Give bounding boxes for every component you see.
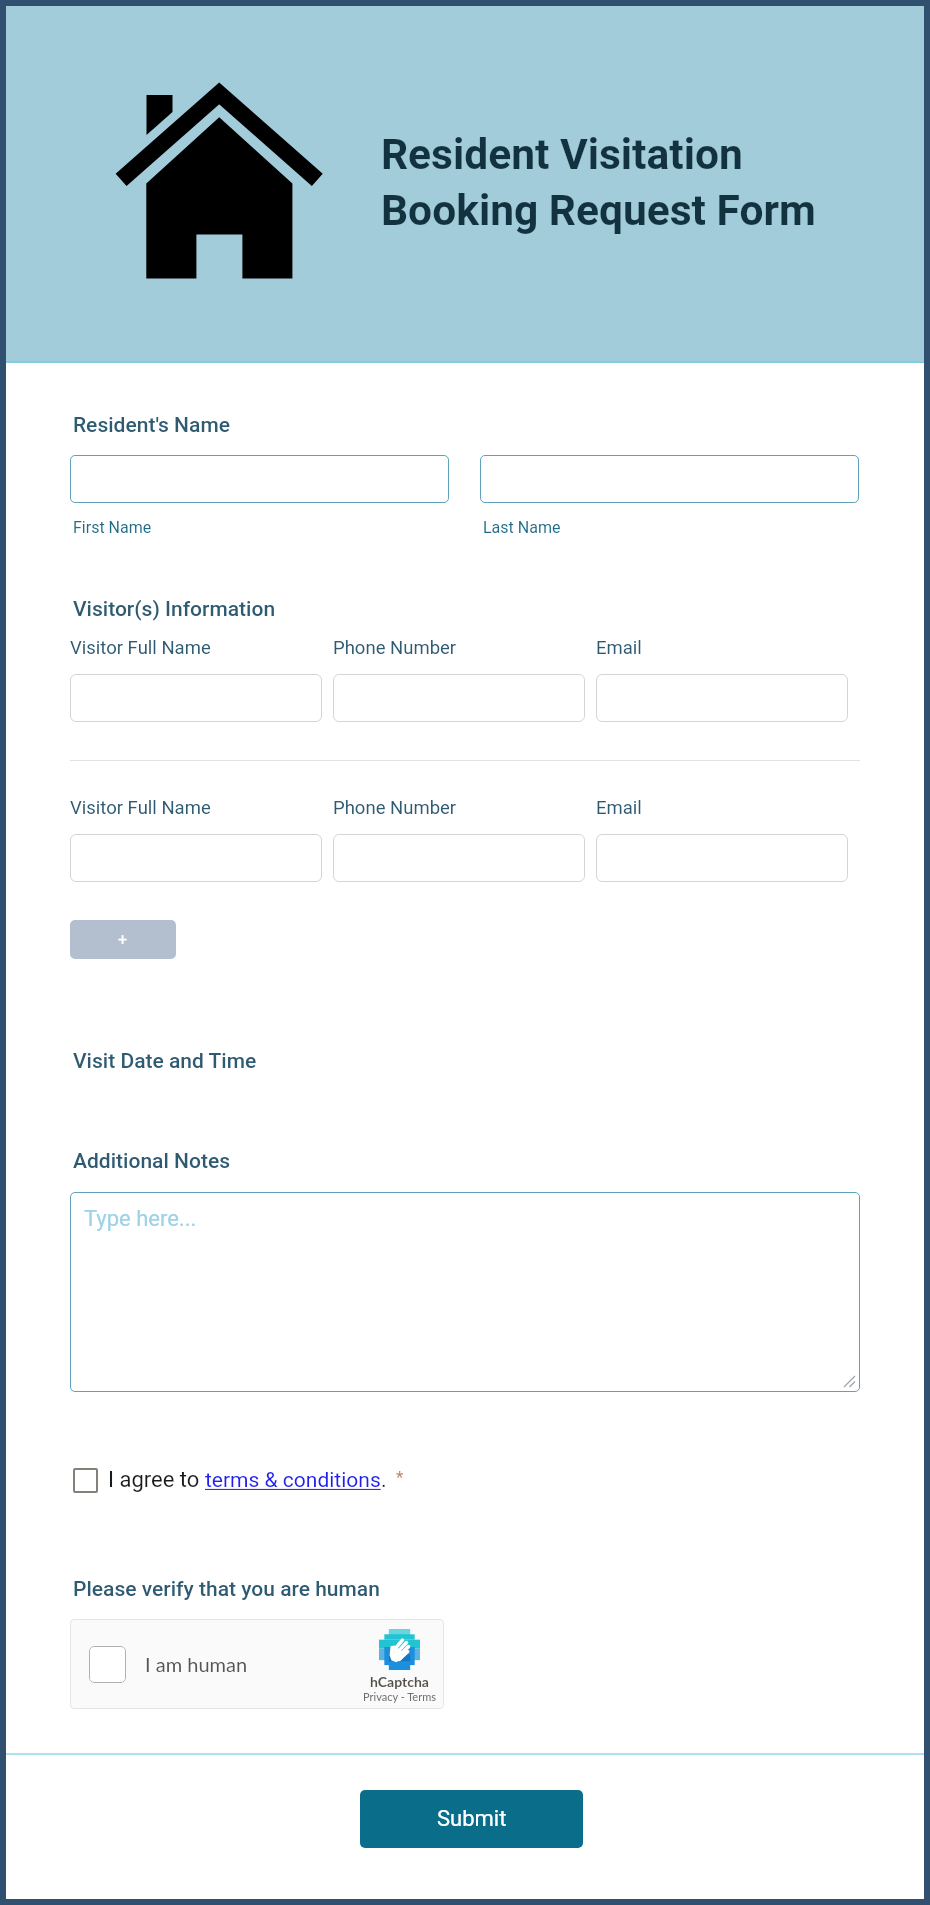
button[interactable]: Submit xyxy=(360,1790,583,1848)
button[interactable]: Last Name xyxy=(480,455,859,503)
button[interactable]: Phone Number xyxy=(333,834,585,882)
button[interactable]: First Name xyxy=(70,455,449,503)
staticText: Phone Number xyxy=(333,637,457,659)
button[interactable]: Phone Number xyxy=(333,674,585,722)
staticText: Resident's Name xyxy=(73,413,230,438)
staticText: hCaptcha xyxy=(370,1673,429,1690)
button[interactable]: I agree to xyxy=(73,1467,404,1493)
button[interactable]: Visitor Full Name xyxy=(70,674,322,722)
staticText: Email xyxy=(596,637,642,659)
staticText: I am human xyxy=(145,1652,248,1676)
staticText: Phone Number xyxy=(333,797,457,819)
staticText: Please verify that you are human xyxy=(73,1577,380,1602)
staticText: . xyxy=(381,1468,387,1493)
staticText: Last Name xyxy=(483,518,561,537)
staticText: + xyxy=(118,930,128,949)
button[interactable]: Email xyxy=(596,834,848,882)
staticText: Type here... xyxy=(84,1206,197,1232)
button[interactable]: Visitor Full Name xyxy=(70,834,322,882)
staticText: First Name xyxy=(73,518,152,537)
staticText: Visitor Full Name xyxy=(70,797,211,819)
staticText: * xyxy=(396,1467,404,1487)
staticText: Visitor Full Name xyxy=(70,637,211,659)
staticText: Email xyxy=(596,797,642,819)
staticText: Submit xyxy=(437,1806,507,1832)
staticText: Additional Notes xyxy=(73,1149,231,1174)
staticText: Visitor(s) Information xyxy=(73,597,276,622)
button[interactable]: Additional notes input xyxy=(70,1192,860,1392)
button[interactable]: Add visitor xyxy=(70,920,176,959)
button[interactable]: Email xyxy=(596,674,848,722)
button[interactable]: I am human xyxy=(70,1619,444,1709)
staticText: terms & conditions xyxy=(205,1468,381,1493)
staticText: I agree to xyxy=(108,1467,205,1493)
staticText: Resident Visitation xyxy=(381,130,743,180)
staticText: Visit Date and Time xyxy=(73,1049,257,1074)
staticText: Privacy - Terms xyxy=(363,1690,436,1703)
staticText: Booking Request Form xyxy=(381,186,816,236)
